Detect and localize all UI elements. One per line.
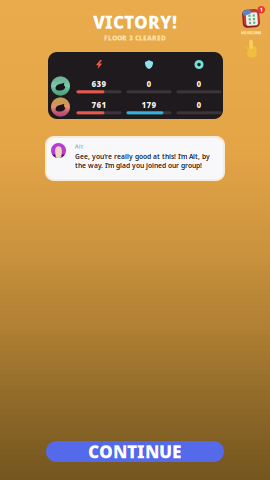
staticText: 179 [141,100,156,110]
staticText: Alt [75,143,83,150]
staticText: 0 [146,79,151,89]
staticText: 0 [196,79,201,89]
staticText: CONTINUE [88,440,182,463]
button[interactable]: CONTINUE [46,441,224,462]
staticText: 0 [196,100,201,110]
staticText: 761 [91,100,106,110]
staticText: 639 [91,79,106,89]
staticText: Gee, you're really good at this! I'm Alt… [75,152,210,170]
staticText: FLOOR 3 CLEARED [104,34,166,42]
staticText: MISSIONS [241,30,261,35]
staticText: VICTORY! [93,10,177,33]
button[interactable]: Missions [234,8,268,35]
staticText: 1 [260,6,263,13]
